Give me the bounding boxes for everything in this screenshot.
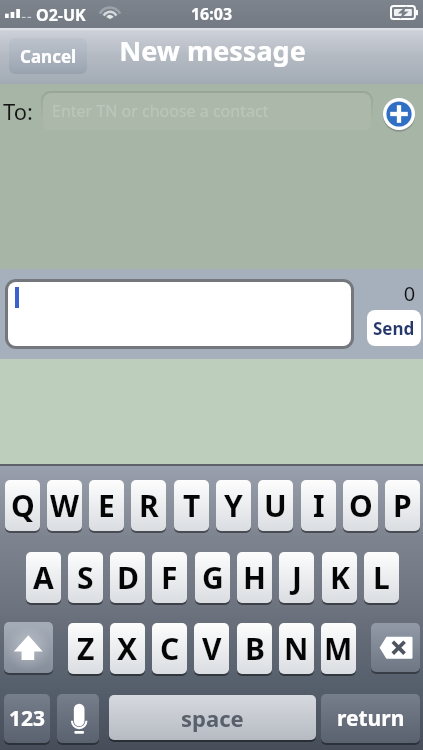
staticText: X <box>117 628 138 669</box>
staticText: Cancel <box>20 45 77 68</box>
button[interactable] <box>8 282 351 346</box>
staticText: I <box>313 485 325 526</box>
button[interactable]: Send <box>367 310 421 346</box>
staticText: G <box>202 557 224 598</box>
button[interactable]: I <box>301 480 336 531</box>
button[interactable]: E <box>89 480 124 531</box>
staticText: 16:03 <box>0 3 423 25</box>
staticText: space <box>181 703 244 733</box>
staticText: J <box>292 557 302 598</box>
button[interactable]: R <box>131 480 166 531</box>
button[interactable]: O <box>343 480 378 531</box>
button[interactable]: Z <box>68 623 103 674</box>
button[interactable]: D <box>110 552 145 603</box>
button[interactable]: V <box>194 623 229 674</box>
staticText: S <box>77 557 94 598</box>
button[interactable]: A <box>26 552 61 603</box>
button[interactable]: Y <box>216 480 251 531</box>
button[interactable]: C <box>152 623 187 674</box>
button[interactable]: P <box>385 480 420 531</box>
staticText: C <box>160 628 180 669</box>
button[interactable]: Shift <box>4 622 53 673</box>
button[interactable]: S <box>68 552 103 603</box>
staticText: return <box>337 704 405 733</box>
button[interactable]: T <box>174 480 209 531</box>
button[interactable]: B <box>237 623 272 674</box>
button[interactable]: N <box>279 623 314 674</box>
staticText: Z <box>77 628 95 669</box>
staticText: T <box>183 485 201 526</box>
button[interactable]: L <box>364 552 399 603</box>
button[interactable]: space <box>109 695 316 740</box>
staticText: N <box>284 628 309 669</box>
staticText: H <box>243 557 266 598</box>
button[interactable]: G <box>195 552 230 603</box>
button[interactable]: Q <box>5 480 40 531</box>
button[interactable]: H <box>237 552 272 603</box>
button[interactable]: Add contact <box>383 98 415 130</box>
staticText: E <box>98 485 115 526</box>
staticText: Q <box>11 485 35 526</box>
button[interactable]: F <box>152 552 187 603</box>
staticText: O <box>349 485 373 526</box>
staticText: To: <box>3 96 33 126</box>
button[interactable]: Backspace <box>371 623 420 672</box>
staticText: F <box>161 557 178 598</box>
button[interactable]: return <box>321 694 420 743</box>
staticText: L <box>373 557 390 598</box>
button[interactable]: 123 <box>4 694 50 743</box>
staticText: M <box>324 628 353 669</box>
staticText: 0 <box>399 280 420 307</box>
staticText: New message <box>1 32 423 69</box>
staticText: O2-UK <box>36 4 86 26</box>
staticText: Y <box>224 485 243 526</box>
button[interactable]: M <box>321 623 356 674</box>
button[interactable]: Enter TN or choose a contact <box>43 93 371 128</box>
button[interactable]: X <box>110 623 145 674</box>
staticText: K <box>330 557 350 598</box>
staticText: U <box>264 485 287 526</box>
staticText: B <box>245 628 265 669</box>
staticText: V <box>202 628 222 669</box>
staticText: D <box>117 557 139 598</box>
staticText: Enter TN or choose a contact <box>52 100 269 122</box>
staticText: 123 <box>9 704 46 733</box>
staticText: W <box>50 485 80 526</box>
button[interactable]: Cancel <box>9 38 87 74</box>
button[interactable]: U <box>258 480 293 531</box>
staticText: A <box>33 557 54 598</box>
button[interactable]: J <box>279 552 314 603</box>
staticText: R <box>139 485 159 526</box>
staticText: Send <box>373 317 415 340</box>
staticText: P <box>393 485 412 526</box>
button[interactable]: Voice input <box>57 694 99 743</box>
button[interactable]: W <box>47 480 82 531</box>
button[interactable]: K <box>322 552 357 603</box>
